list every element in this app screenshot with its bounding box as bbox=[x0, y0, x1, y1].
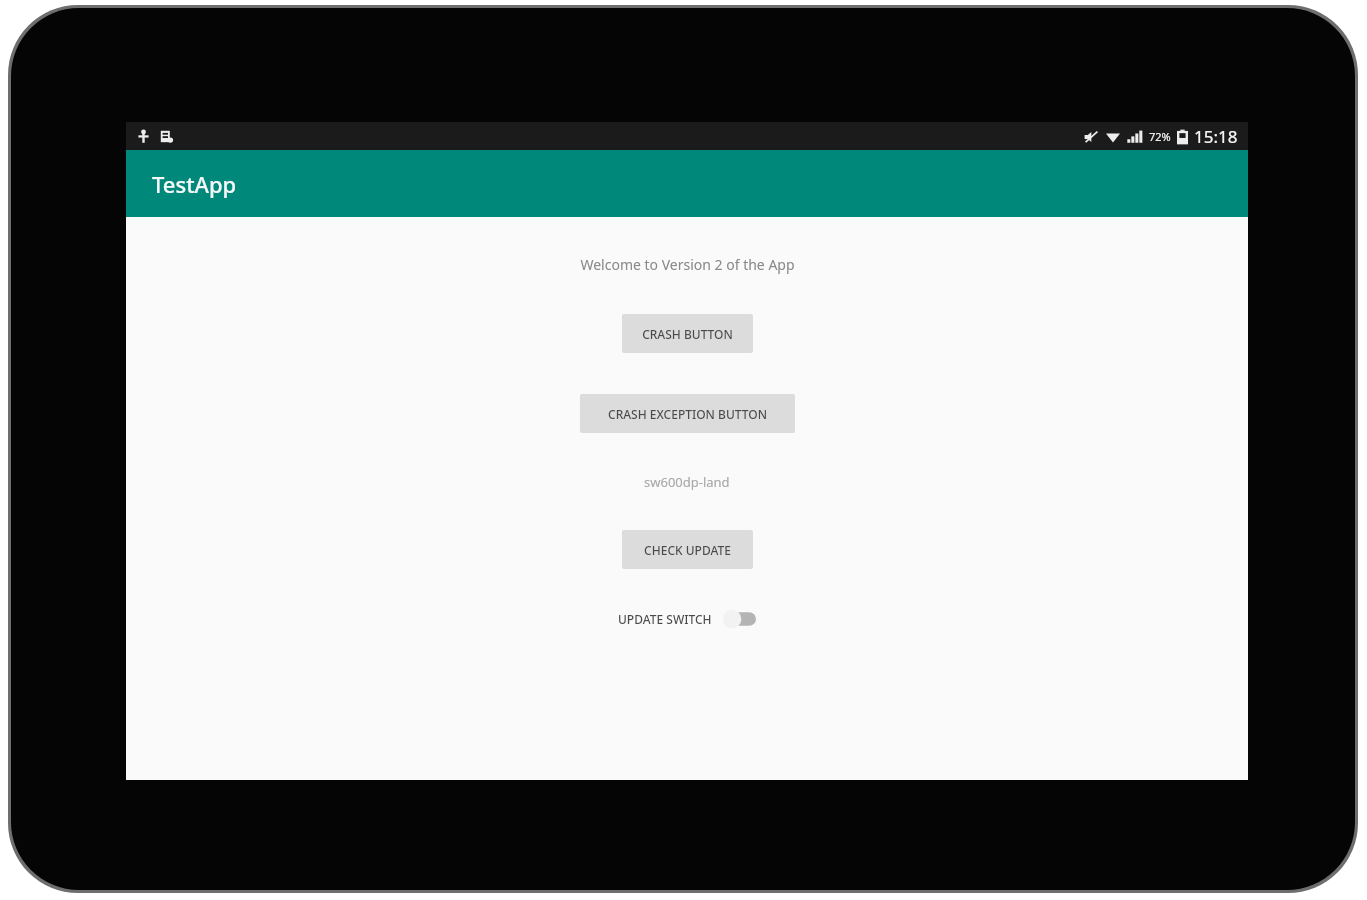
staticText: 72% bbox=[1149, 129, 1171, 144]
staticText: UPDATE SWITCH bbox=[618, 611, 712, 627]
staticText: CRASH BUTTON bbox=[642, 326, 733, 342]
button[interactable]: CRASH EXCEPTION BUTTON bbox=[580, 394, 795, 433]
button[interactable]: CHECK UPDATE bbox=[622, 530, 753, 569]
staticText: CHECK UPDATE bbox=[644, 542, 731, 558]
staticText: sw600dp-land bbox=[644, 473, 730, 491]
staticText: CRASH EXCEPTION BUTTON bbox=[608, 406, 767, 422]
button[interactable]: CRASH BUTTON bbox=[622, 314, 753, 353]
other: Update switch toggle bbox=[722, 608, 756, 630]
staticText: TestApp bbox=[152, 169, 237, 199]
staticText: 15:18 bbox=[1194, 125, 1238, 148]
staticText: Welcome to Version 2 of the App bbox=[580, 255, 795, 274]
button[interactable]: UPDATE SWITCH bbox=[618, 599, 756, 639]
